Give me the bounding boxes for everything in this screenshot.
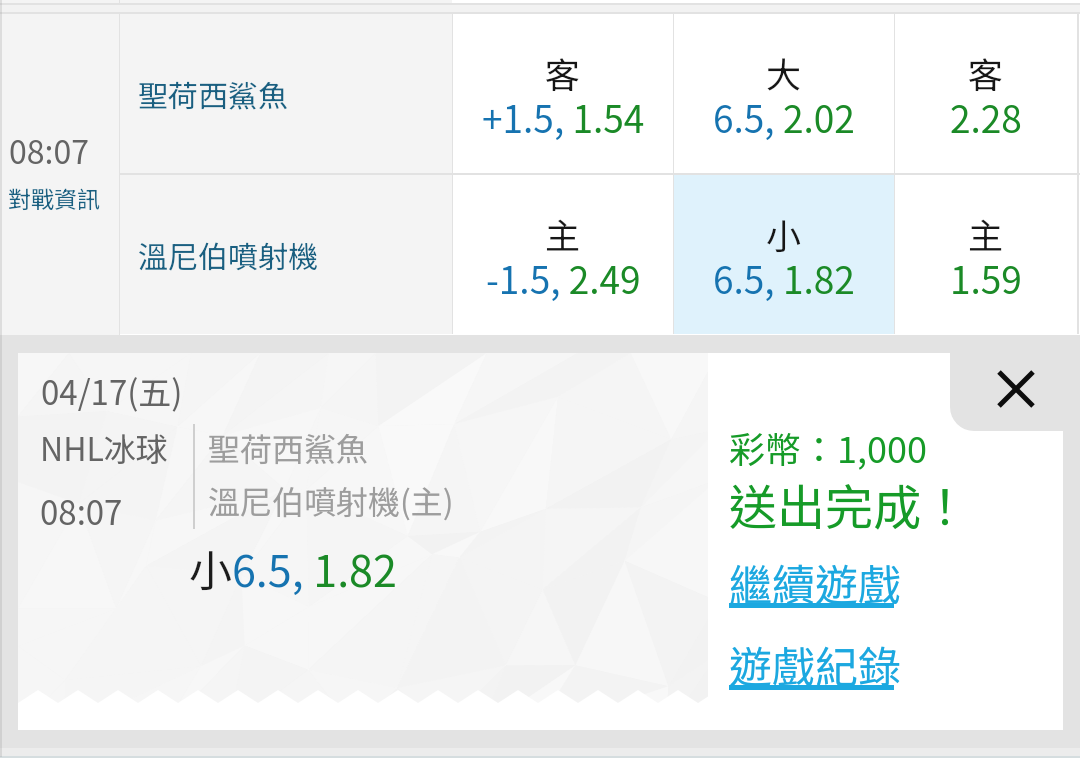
button[interactable]: 主 — [895, 175, 1077, 334]
button[interactable]: 主 — [453, 175, 673, 334]
staticText: 1.59 — [950, 251, 1022, 305]
staticText: 送出完成！ — [729, 469, 970, 539]
staticText: 小6.5, 1.82 — [189, 537, 397, 599]
staticText: 08:07 — [9, 127, 89, 173]
button[interactable]: 小 — [674, 175, 894, 334]
staticText: 客 — [968, 47, 1004, 98]
staticText: +1.5, 1.54 — [482, 90, 645, 144]
button[interactable]: Close — [950, 335, 1080, 431]
staticText: 溫尼伯噴射機 — [138, 233, 318, 276]
staticText: 遊戲紀錄 — [729, 633, 901, 695]
staticText: 主 — [968, 208, 1004, 259]
staticText: 6.5, 2.02 — [713, 90, 855, 144]
staticText: 大 — [766, 47, 802, 98]
staticText: 小 — [766, 208, 802, 259]
staticText: 繼續遊戲 — [729, 551, 901, 613]
staticText: 08:07 — [40, 487, 123, 535]
staticText: 聖荷西鯊魚 — [208, 424, 369, 470]
button[interactable]: 溫尼伯噴射機 — [120, 175, 452, 334]
staticText: 彩幣：1,000 — [729, 421, 927, 473]
button[interactable]: 聖荷西鯊魚 — [120, 14, 452, 173]
button[interactable]: 對戰資訊 — [8, 181, 100, 214]
staticText: 主 — [545, 208, 581, 259]
staticText: 04/17(五) — [41, 367, 183, 415]
staticText: 6.5, 1.82 — [713, 251, 855, 305]
staticText: NHL冰球 — [40, 424, 168, 470]
staticText: -1.5, 2.49 — [486, 251, 641, 305]
button[interactable]: 繼續遊戲 — [729, 551, 901, 613]
button[interactable]: 大 — [674, 14, 894, 173]
button[interactable]: 客 — [895, 14, 1077, 173]
button[interactable]: 客 — [453, 14, 673, 173]
staticText: 聖荷西鯊魚 — [138, 72, 288, 115]
staticText: 溫尼伯噴射機(主) — [208, 477, 454, 523]
button[interactable]: 遊戲紀錄 — [729, 633, 901, 695]
staticText: 2.28 — [950, 90, 1022, 144]
staticText: 客 — [545, 47, 581, 98]
